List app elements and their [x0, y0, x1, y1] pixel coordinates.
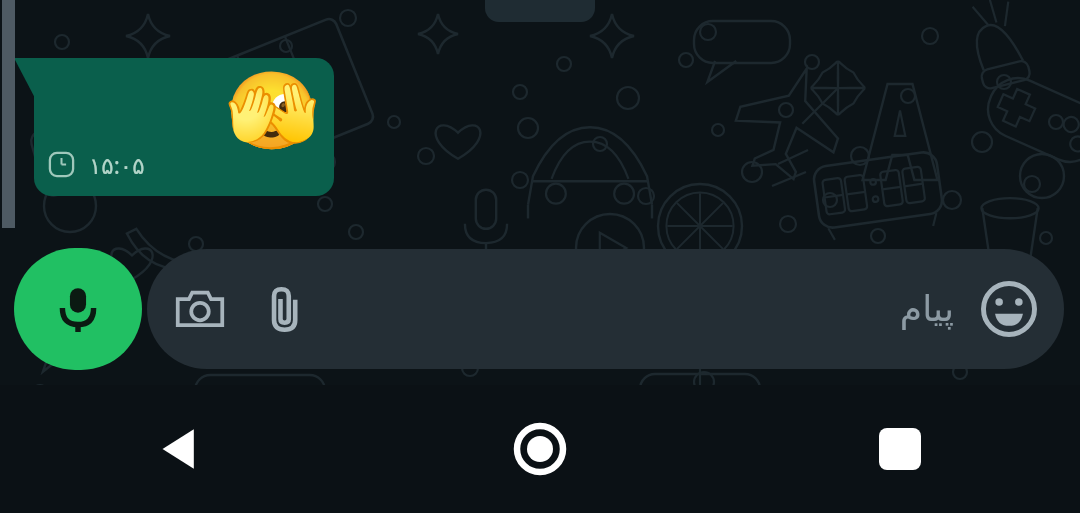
button[interactable]: Attach	[255, 278, 317, 340]
staticText: 🫣	[225, 66, 320, 155]
button[interactable]: Home	[360, 385, 720, 513]
staticText: پیام	[899, 288, 954, 330]
staticText: ۱۵:۰۵	[89, 149, 145, 180]
button[interactable]: Camera	[147, 249, 1064, 369]
button[interactable]: 🫣	[34, 58, 334, 196]
button[interactable]: Back	[0, 385, 360, 513]
button[interactable]: Record voice message	[14, 248, 142, 370]
button[interactable]: Recent apps	[720, 385, 1080, 513]
button[interactable]: Emoji	[976, 276, 1042, 342]
button[interactable]: Camera	[169, 278, 231, 340]
